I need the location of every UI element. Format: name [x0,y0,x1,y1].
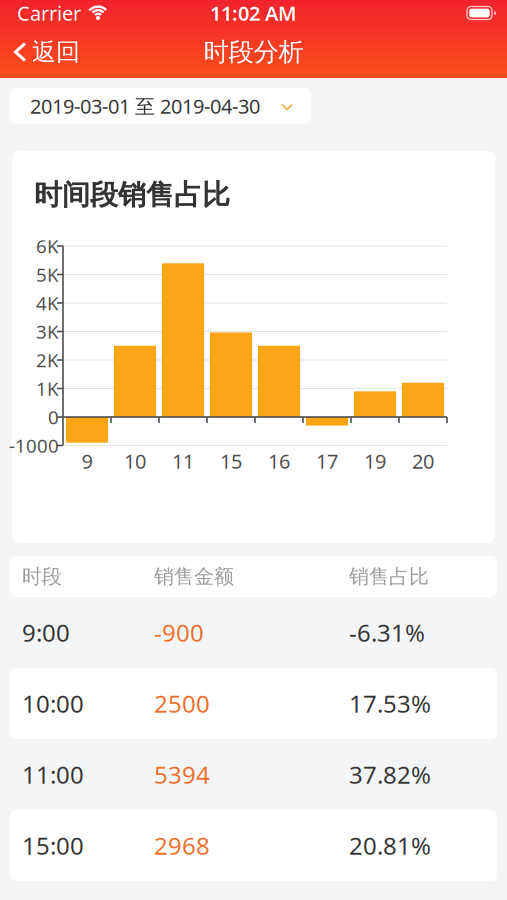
staticText: -1000 [9,433,59,458]
staticText: 20 [412,448,434,474]
staticText: 销售金额 [154,564,234,589]
staticText: 9 [81,448,92,474]
staticText: 17.53% [349,688,431,719]
staticText: 19 [364,448,386,474]
staticText: 5394 [154,759,210,790]
staticText: -900 [154,617,204,648]
staticText: 11:00 [22,759,84,790]
button[interactable]: 返回 [0,26,90,78]
staticText: 17 [316,448,338,474]
staticText: 1K [36,376,59,401]
staticText: 3K [36,319,59,344]
staticText: 0 [48,405,59,429]
staticText: 10:00 [22,688,84,719]
staticText: 时段 [22,564,62,589]
staticText: 11:02 AM [210,0,297,26]
staticText: 15 [220,448,242,474]
button[interactable]: 11:00 [0,739,507,810]
staticText: 20.81% [349,830,431,861]
button[interactable]: 选择日期范围 [10,88,311,124]
staticText: 时段分析 [203,36,303,67]
staticText: 时间段销售占比 [34,178,230,212]
staticText: 9:00 [22,617,70,648]
staticText: 5K [36,262,59,287]
staticText: 4K [36,291,59,315]
staticText: 6K [36,234,59,258]
staticText: 2K [36,348,59,372]
button[interactable]: 9:00 [0,597,507,668]
staticText: 11 [172,448,194,474]
staticText: 10 [124,448,146,474]
staticText: 16 [268,448,290,474]
staticText: 2019-03-01 至 2019-04-30 [30,93,260,119]
button[interactable]: 15:00 [0,810,507,881]
staticText: -6.31% [349,617,425,648]
staticText: 2500 [154,688,210,719]
staticText: Carrier [17,0,81,26]
staticText: 销售占比 [349,564,429,589]
staticText: 37.82% [349,759,431,790]
staticText: 2968 [154,830,210,861]
button[interactable]: 10:00 [0,668,507,739]
staticText: 15:00 [22,830,84,861]
staticText: 返回 [32,37,80,67]
